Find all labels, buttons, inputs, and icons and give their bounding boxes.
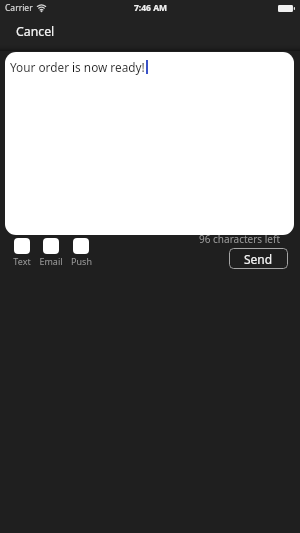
other: Battery: [278, 5, 295, 12]
staticText: Push: [71, 255, 92, 267]
button[interactable]: Your order is now ready!: [5, 52, 294, 235]
button[interactable]: Text: [9, 238, 35, 267]
button[interactable]: Email: [38, 238, 64, 267]
staticText: 96 characters left: [199, 232, 281, 246]
staticText: 7:46 AM: [134, 2, 168, 14]
button[interactable]: Push: [68, 238, 94, 267]
other: Wifi: [36, 4, 47, 12]
staticText: Email: [39, 255, 63, 267]
button[interactable]: Cancel: [10, 20, 61, 43]
staticText: Send: [244, 251, 273, 267]
button[interactable]: Send: [229, 248, 288, 269]
staticText: Text: [13, 255, 31, 267]
staticText: Carrier: [5, 2, 33, 14]
staticText: Cancel: [16, 23, 55, 40]
staticText: Your order is now ready!: [10, 59, 145, 75]
